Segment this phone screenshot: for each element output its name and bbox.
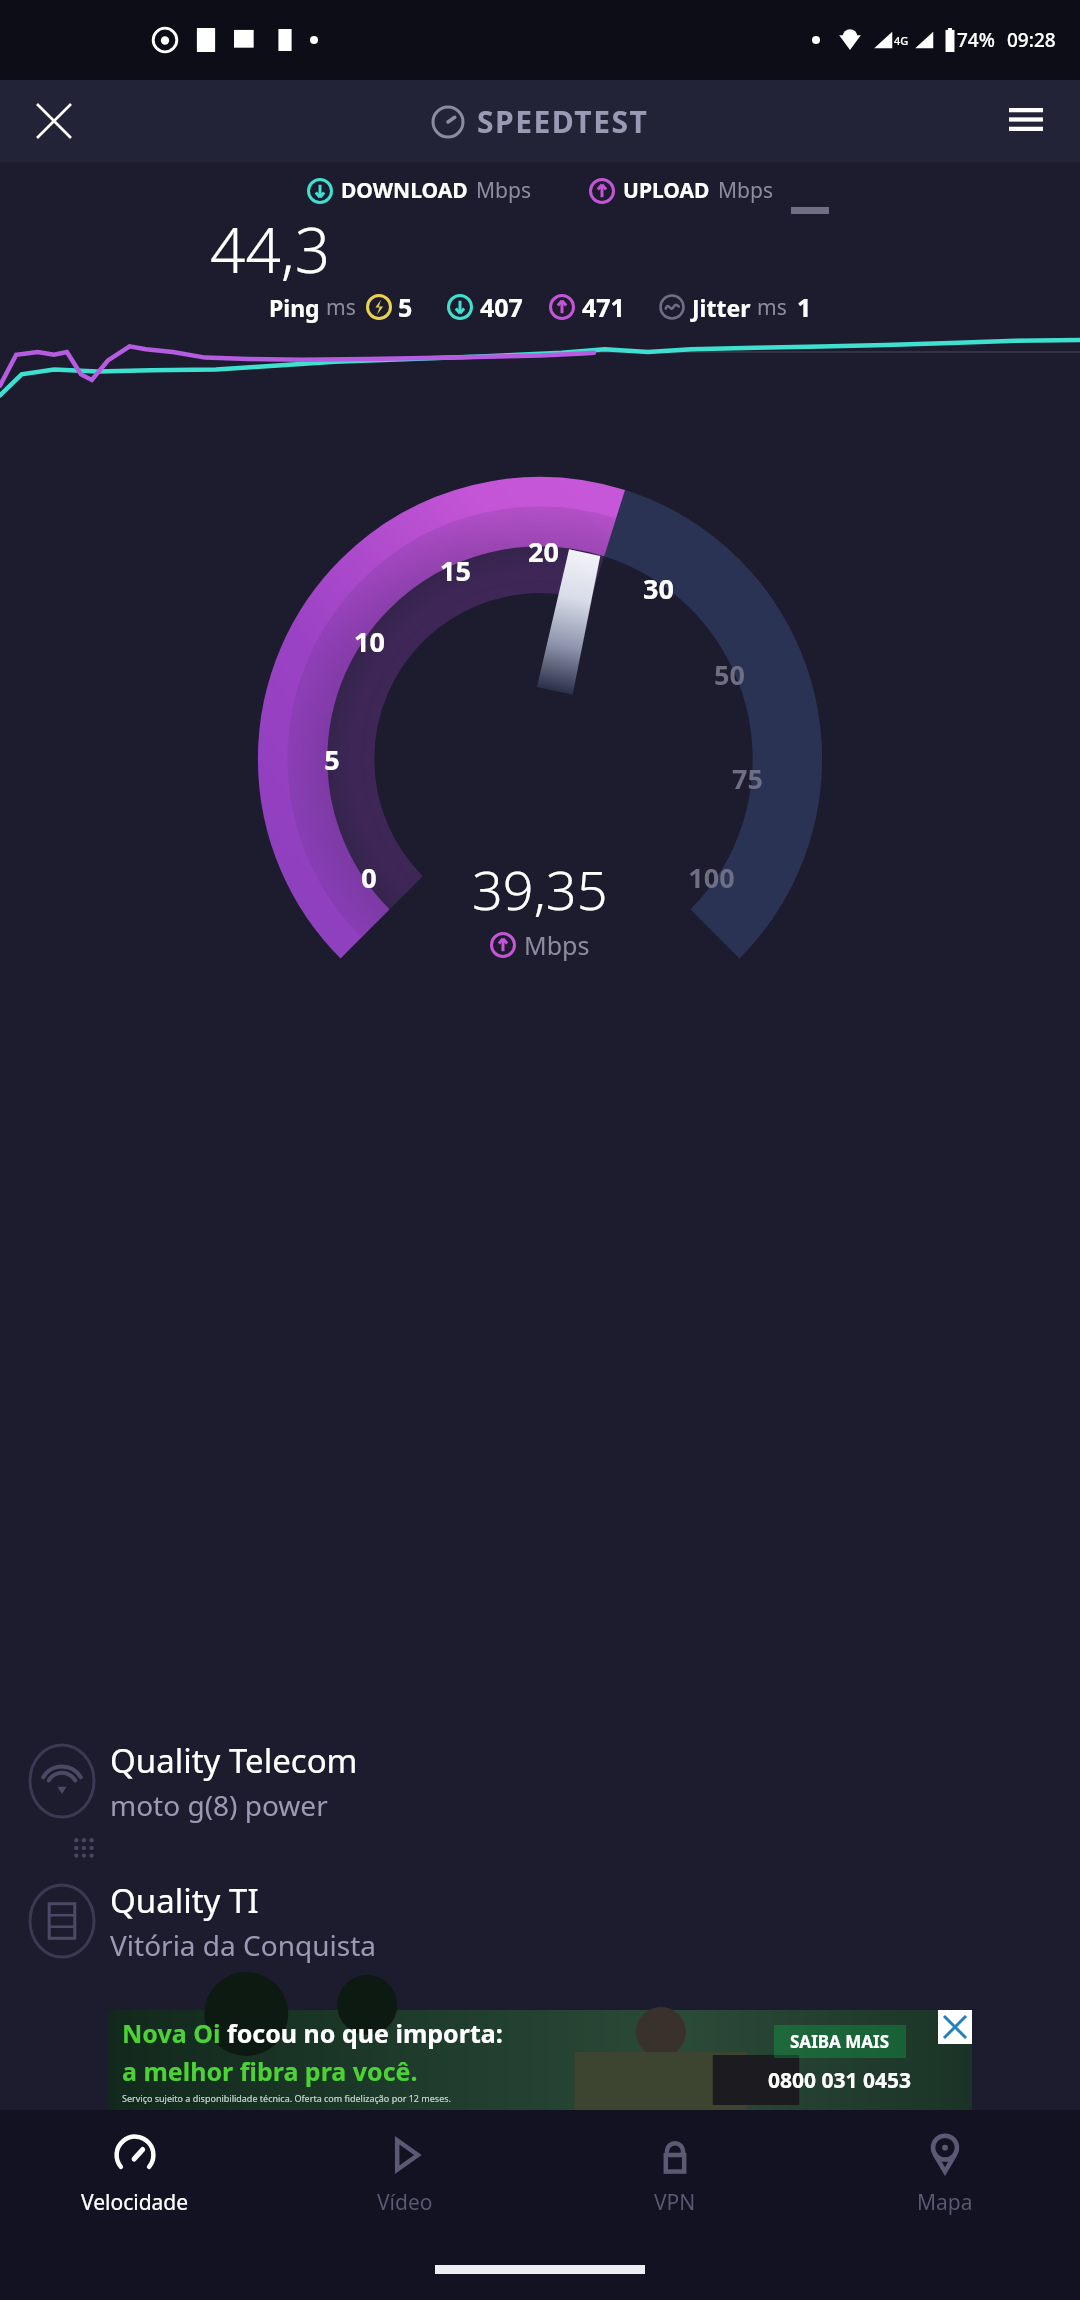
staticText: a melhor fibra pra você. [122,2054,418,2088]
staticText: ms [757,293,787,322]
staticText: Velocidade [81,2188,189,2217]
staticText: 50 [714,656,745,693]
staticText: Jitter [692,292,751,323]
staticText: 0800 031 0453 [768,2066,912,2095]
staticText: 15 [440,552,471,589]
staticText: focou no que importa: [227,2016,503,2050]
staticText: Mbps [476,176,531,205]
staticText: Mapa [917,2188,973,2217]
staticText: Quality TI [110,1878,259,1923]
staticText: 1 [797,290,812,324]
staticText: 09:28 [1007,27,1056,53]
staticText: 100 [688,859,735,896]
staticText: 5 [324,741,340,778]
staticText: moto g(8) power [110,1786,328,1824]
staticText: UPLOAD [623,176,710,205]
staticText: Quality Telecom [110,1738,358,1783]
staticText: 75 [732,760,763,797]
button[interactable]: Velocidade [0,2110,270,2238]
button[interactable]: Close [26,93,82,149]
button[interactable]: Quality Telecom [0,1728,1080,1834]
staticText: 4G [894,33,909,48]
staticText: DOWNLOAD [341,176,468,205]
button[interactable]: Mapa [810,2110,1080,2238]
staticText: Vitória da Conquista [110,1926,376,1964]
staticText: 30 [643,570,674,607]
staticText: 471 [582,290,625,324]
staticText: 20 [528,533,559,570]
staticText: 407 [480,290,523,324]
button[interactable]: Menu [998,93,1054,149]
staticText: SPEEDTEST [477,101,649,142]
button[interactable]: Quality TI [0,1868,1080,1974]
button[interactable]: Vídeo [270,2110,540,2238]
button[interactable]: Close ad [938,2010,972,2044]
staticText: ms [326,293,356,322]
staticText: SAIBA MAIS [790,2030,890,2053]
staticText: 44,3 [210,207,331,283]
staticText: VPN [654,2188,696,2217]
staticText: 0 [361,859,377,896]
staticText: Mbps [524,928,590,962]
staticText: 39,35 [472,852,608,926]
staticText: 74% [957,27,995,53]
staticText: Nova Oi [122,2016,227,2050]
button[interactable]: VPN [540,2110,810,2238]
button[interactable]: SPEEDTEST [431,101,649,142]
staticText: 5 [398,290,413,324]
button[interactable]: Nova Oi [108,2010,972,2110]
staticText: Ping [269,292,320,323]
staticText: Vídeo [377,2188,433,2217]
staticText: Serviço sujeito a disponibilidade técnic… [122,2092,451,2104]
staticText: 10 [354,623,385,660]
staticText: Mbps [718,176,773,205]
